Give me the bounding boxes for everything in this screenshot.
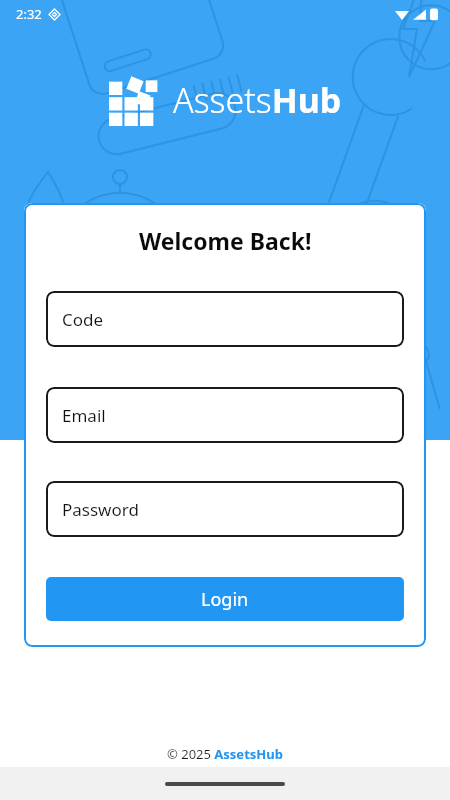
- staticText: Email: [62, 404, 106, 427]
- button[interactable]: Email: [46, 387, 404, 443]
- button[interactable]: Login: [46, 577, 404, 621]
- staticText: © 2025 AssetsHub: [167, 745, 283, 763]
- staticText: Code: [62, 308, 104, 331]
- staticText: 2:32: [16, 5, 42, 23]
- staticText: Welcome Back!: [139, 225, 312, 256]
- button[interactable]: Code: [46, 291, 404, 347]
- staticText: Login: [201, 587, 249, 612]
- staticText: Password: [62, 498, 139, 521]
- button[interactable]: Password: [46, 481, 404, 537]
- staticText: AssetsHub: [173, 77, 342, 123]
